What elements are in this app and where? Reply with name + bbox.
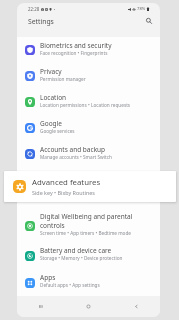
- staticText: Face recognition • Fingerprints: [40, 50, 108, 56]
- button[interactable]: Biometrics and security: [17, 37, 160, 63]
- staticText: Manage accounts • Smart Switch: [40, 154, 112, 160]
- staticText: Google services: [40, 128, 75, 134]
- staticText: Location: [40, 93, 67, 102]
- staticText: 22:28: [28, 6, 40, 12]
- staticText: Screen time • App timers • Bedtime mode: [40, 230, 131, 236]
- button[interactable]: Battery and device care: [17, 242, 160, 269]
- staticText: Settings: [28, 17, 54, 26]
- button[interactable]: Location: [17, 89, 160, 115]
- button[interactable]: Advanced features: [4, 171, 176, 202]
- button[interactable]: Digital Wellbeing and parental controls: [17, 209, 160, 242]
- staticText: Digital Wellbeing and parental controls: [40, 212, 135, 230]
- button[interactable]: Accounts and backup: [17, 141, 160, 167]
- button[interactable]: Apps: [17, 269, 160, 296]
- button[interactable]: Google: [17, 115, 160, 141]
- staticText: Storage • Memory • Device protection: [40, 255, 123, 261]
- staticText: Google: [40, 119, 62, 128]
- staticText: 78%: [137, 6, 146, 12]
- button[interactable]: Search: [143, 15, 154, 26]
- staticText: Advanced features: [32, 177, 101, 188]
- button[interactable]: Recents: [17, 296, 64, 317]
- staticText: Side key • Bixby Routines: [32, 189, 95, 196]
- staticText: Default apps • App settings: [40, 282, 100, 288]
- staticText: Apps: [40, 273, 56, 282]
- staticText: Biometrics and security: [40, 41, 112, 50]
- button[interactable]: Home: [64, 296, 112, 317]
- staticText: Location permissions • Location requests: [40, 102, 131, 108]
- staticText: Permission manager: [40, 76, 86, 82]
- button[interactable]: Privacy: [17, 63, 160, 89]
- button[interactable]: Back: [112, 296, 160, 317]
- staticText: Accounts and backup: [40, 145, 106, 154]
- staticText: Privacy: [40, 67, 62, 76]
- staticText: Battery and device care: [40, 246, 112, 255]
